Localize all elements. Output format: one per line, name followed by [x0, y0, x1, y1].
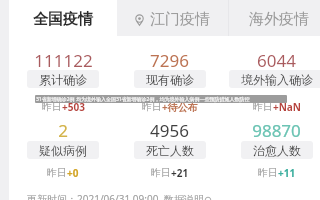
staticText: +0: [67, 166, 79, 180]
staticText: 累计确诊: [39, 72, 87, 87]
button[interactable]: 海外疫情: [228, 0, 320, 36]
button[interactable]: 全国疫情: [9, 0, 117, 36]
button[interactable]: 现有确诊: [134, 70, 206, 88]
staticText: 昨日: [47, 166, 67, 179]
staticText: 海外疫情: [249, 10, 309, 29]
button[interactable]: 境外输入确诊: [229, 70, 320, 88]
staticText: 治愈人数: [253, 143, 301, 158]
staticText: 昨日: [253, 100, 273, 113]
staticText: 疑似病例: [39, 143, 87, 158]
staticText: 昨日: [142, 100, 162, 113]
staticText: 境外输入确诊: [241, 72, 313, 87]
staticText: 江门疫情: [150, 10, 210, 29]
staticText: 昨日: [258, 166, 278, 179]
other: 数据说明: [204, 196, 212, 200]
staticText: 111122: [34, 49, 93, 72]
button[interactable]: 死亡人数: [134, 141, 206, 159]
staticText: 31省新增确诊2例 均为境外输入全国31省新增确诊2例，均为境外输入病例一些预防…: [36, 96, 250, 103]
staticText: +待公布: [162, 100, 198, 114]
button[interactable]: 数据说明: [164, 193, 212, 200]
staticText: 死亡人数: [146, 143, 194, 158]
staticText: +NaN: [273, 100, 301, 114]
staticText: 7296: [150, 49, 189, 72]
staticText: 现有确诊: [146, 72, 194, 87]
button[interactable]: 31省新增确诊2例 均为境外输入全国31省新增确诊2例，均为境外输入病例一些预防…: [35, 95, 287, 103]
staticText: 4956: [150, 119, 189, 142]
staticText: 2: [58, 119, 68, 142]
staticText: 98870: [252, 119, 301, 142]
staticText: 昨日: [151, 166, 171, 179]
button[interactable]: 疑似病例: [27, 141, 99, 159]
staticText: 数据说明: [164, 193, 204, 200]
staticText: 全国疫情: [33, 10, 93, 29]
button[interactable]: 累计确诊: [27, 70, 99, 88]
staticText: 更新时间：2021/06/31 09:00: [27, 192, 159, 200]
button[interactable]: 治愈人数: [241, 141, 313, 159]
staticText: 昨日: [42, 100, 62, 113]
staticText: 6044: [257, 49, 296, 72]
staticText: +21: [171, 166, 189, 180]
staticText: +503: [62, 100, 85, 114]
staticText: +11: [278, 166, 296, 180]
button[interactable]: 江门疫情: [117, 0, 228, 36]
